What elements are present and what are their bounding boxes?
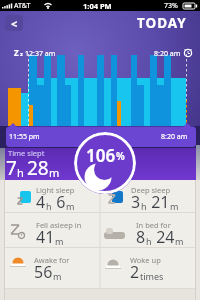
button[interactable]: Woke up <box>100 250 200 282</box>
staticText: 41 <box>36 226 55 248</box>
staticText: 4 <box>36 191 46 213</box>
staticText: 56 <box>34 261 53 283</box>
staticText: m <box>49 165 60 180</box>
staticText: h <box>141 200 147 212</box>
staticText: 73% <box>164 1 178 11</box>
staticText: % <box>116 149 125 163</box>
staticText: TODAY <box>137 14 187 32</box>
staticText: 106 <box>86 144 116 167</box>
staticText: Time slept <box>8 148 45 158</box>
staticText: AT&T <box>14 1 31 11</box>
staticText: 11:55 pm <box>9 132 40 142</box>
staticText: 8:20 am <box>154 49 181 59</box>
staticText: times <box>140 270 164 282</box>
staticText: z <box>20 50 23 58</box>
button[interactable]: Awake for <box>0 250 100 282</box>
staticText: < <box>11 16 18 31</box>
staticText: m <box>55 235 64 247</box>
staticText: h <box>17 165 27 180</box>
button[interactable]: In bed for <box>100 215 200 247</box>
staticText: In bed for <box>136 220 171 230</box>
staticText: Deep sleep <box>131 185 171 195</box>
staticText: 8 <box>136 226 146 248</box>
staticText: 28 <box>27 155 49 181</box>
button[interactable]: Deep sleep <box>100 180 200 212</box>
staticText: h <box>46 200 52 212</box>
staticText: 24 <box>152 226 175 248</box>
staticText: Woke up <box>130 255 161 265</box>
staticText: 8:20 am <box>161 132 188 142</box>
staticText: 2 <box>130 261 140 283</box>
staticText: h <box>146 235 152 247</box>
staticText: 12:37 am <box>25 49 56 59</box>
button[interactable]: 106 <box>74 132 136 194</box>
staticText: Z <box>14 47 19 58</box>
staticText: m <box>66 200 75 212</box>
staticText: Awake for <box>34 255 70 265</box>
staticText: 7 <box>6 155 17 181</box>
staticText: Light sleep <box>36 185 75 195</box>
staticText: 6 <box>52 191 66 213</box>
staticText: m <box>53 270 62 282</box>
staticText: Fell asleep in <box>36 220 82 230</box>
button[interactable]: Fell asleep in <box>0 215 100 247</box>
staticText: 21 <box>147 191 170 213</box>
button[interactable]: Light sleep <box>0 180 100 212</box>
staticText: 3 <box>131 191 141 213</box>
staticText: m <box>175 235 184 247</box>
staticText: 1:04 PM <box>83 1 112 11</box>
button[interactable]: < <box>5 15 23 31</box>
staticText: m <box>170 200 179 212</box>
